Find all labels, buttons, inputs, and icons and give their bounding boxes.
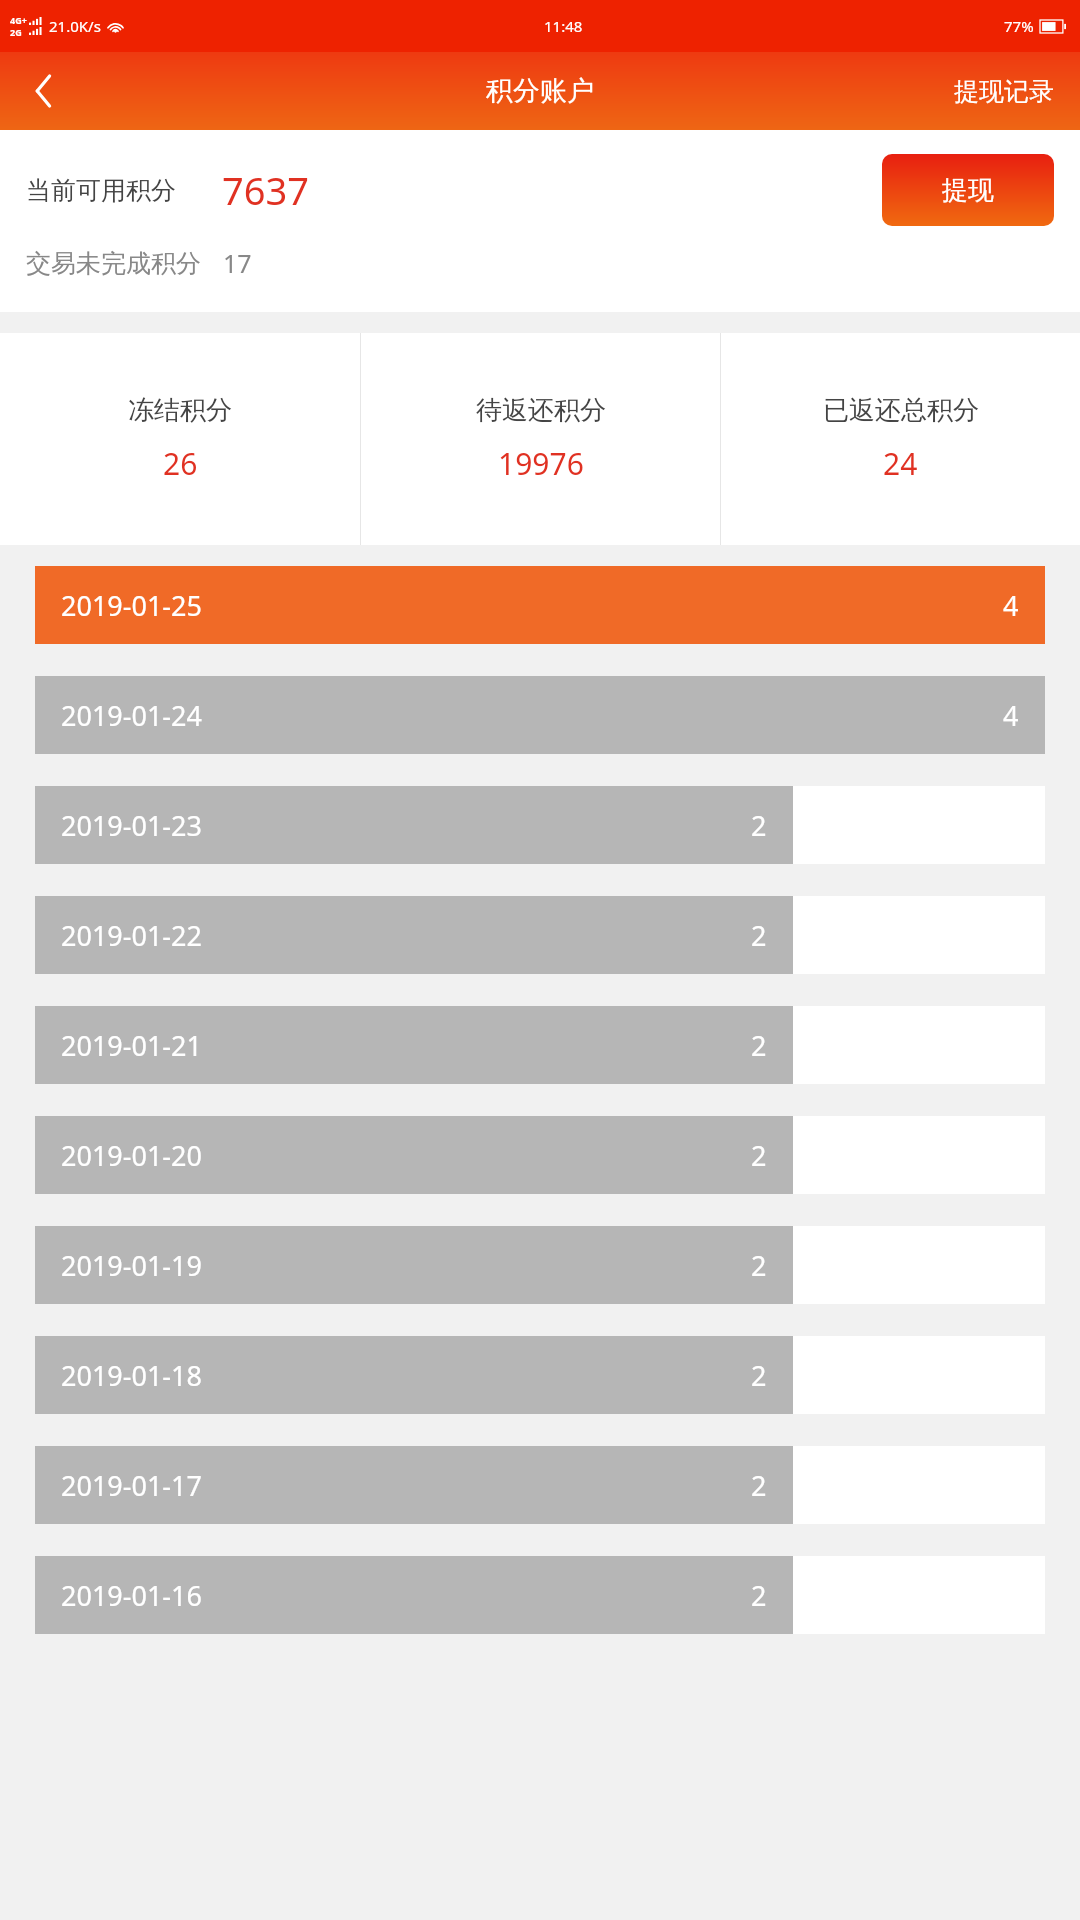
- staticText: 2: [751, 917, 767, 954]
- staticText: 2: [751, 1027, 767, 1064]
- staticText: 24: [883, 443, 918, 484]
- staticText: 4: [1003, 697, 1019, 734]
- button[interactable]: Back: [0, 52, 88, 130]
- staticText: 2019-01-20: [61, 1137, 202, 1174]
- staticText: 19976: [498, 443, 584, 484]
- staticText: 当前可用积分: [26, 175, 176, 206]
- staticText: 2: [751, 1577, 767, 1614]
- staticText: 26: [163, 443, 198, 484]
- staticText: 2019-01-18: [61, 1357, 202, 1394]
- staticText: 2: [751, 1137, 767, 1174]
- button[interactable]: 2019-01-17: [35, 1446, 1045, 1524]
- staticText: 17: [223, 246, 252, 280]
- staticText: 积分账户: [486, 74, 594, 108]
- staticText: 2: [751, 1467, 767, 1504]
- staticText: 提现: [942, 174, 994, 207]
- staticText: 冻结积分: [128, 394, 232, 427]
- staticText: 2019-01-24: [61, 697, 202, 734]
- staticText: 待返还积分: [476, 394, 606, 427]
- staticText: 77%: [1004, 16, 1034, 36]
- staticText: 2019-01-22: [61, 917, 202, 954]
- button[interactable]: 2019-01-25: [35, 566, 1045, 644]
- button[interactable]: 提现: [882, 154, 1054, 226]
- staticText: 2: [751, 1247, 767, 1284]
- button[interactable]: 2019-01-19: [35, 1226, 1045, 1304]
- staticText: 交易未完成积分: [26, 248, 201, 279]
- button[interactable]: 2019-01-23: [35, 786, 1045, 864]
- button[interactable]: 待返还积分: [361, 333, 720, 545]
- staticText: 21.0K/s: [49, 16, 101, 36]
- button[interactable]: 2019-01-21: [35, 1006, 1045, 1084]
- button[interactable]: 冻结积分: [0, 333, 360, 545]
- staticText: 11:48: [544, 16, 583, 36]
- staticText: 2G: [10, 26, 22, 38]
- staticText: 2019-01-23: [61, 807, 202, 844]
- staticText: 已返还总积分: [823, 394, 979, 427]
- staticText: 2019-01-19: [61, 1247, 202, 1284]
- button[interactable]: 2019-01-18: [35, 1336, 1045, 1414]
- staticText: 2019-01-17: [61, 1467, 202, 1504]
- staticText: 2: [751, 807, 767, 844]
- staticText: 2019-01-16: [61, 1577, 202, 1614]
- staticText: 4G+: [10, 14, 27, 26]
- button[interactable]: 2019-01-16: [35, 1556, 1045, 1634]
- staticText: 7637: [222, 164, 309, 216]
- staticText: 2019-01-21: [61, 1027, 202, 1064]
- button[interactable]: 2019-01-20: [35, 1116, 1045, 1194]
- button[interactable]: 已返还总积分: [721, 333, 1080, 545]
- staticText: 2: [751, 1357, 767, 1394]
- button[interactable]: 提现记录: [928, 52, 1080, 130]
- staticText: 提现记录: [954, 76, 1054, 107]
- staticText: 2019-01-25: [61, 587, 202, 624]
- staticText: 4: [1003, 587, 1019, 624]
- button[interactable]: 2019-01-24: [35, 676, 1045, 754]
- button[interactable]: 2019-01-22: [35, 896, 1045, 974]
- button[interactable]: 积分账户: [0, 52, 1080, 130]
